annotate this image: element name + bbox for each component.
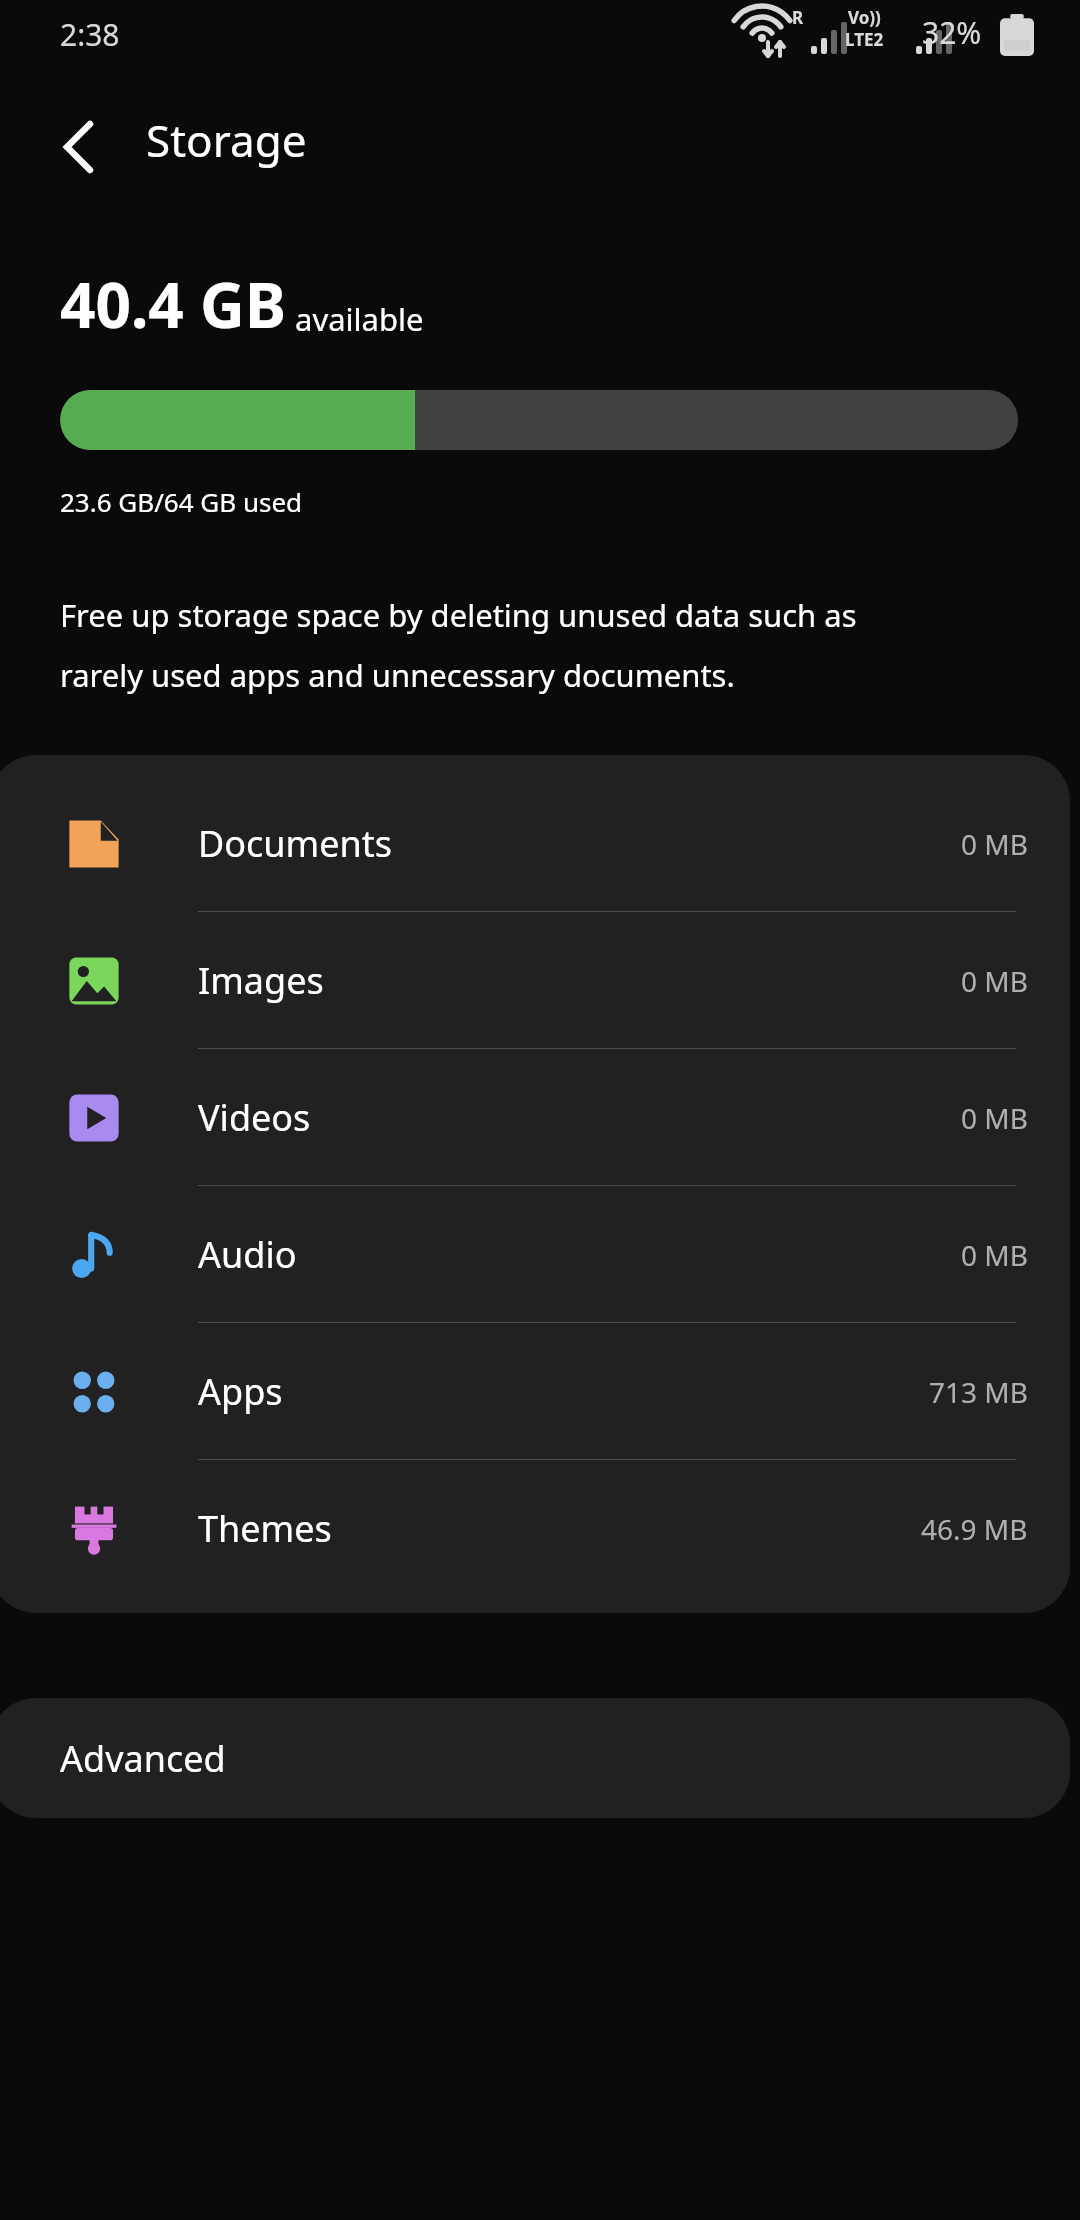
staticText: 32% bbox=[922, 12, 982, 53]
staticText: 0 MB bbox=[961, 1099, 1028, 1137]
staticText: Themes bbox=[198, 1504, 332, 1553]
staticText: 40.4 GB bbox=[60, 262, 287, 346]
staticText: R bbox=[792, 6, 804, 29]
button[interactable]: Advanced bbox=[0, 1698, 1070, 1818]
staticText: Documents bbox=[198, 819, 393, 868]
button[interactable]: Images bbox=[0, 912, 1070, 1049]
staticText: 2:38 bbox=[60, 14, 120, 55]
button[interactable]: Back bbox=[24, 92, 134, 202]
button[interactable]: Documents bbox=[0, 775, 1070, 912]
staticText: available bbox=[295, 298, 424, 340]
staticText: Audio bbox=[198, 1230, 297, 1279]
staticText: 23.6 GB/64 GB used bbox=[60, 484, 303, 519]
staticText: Advanced bbox=[60, 1734, 226, 1783]
button[interactable]: Audio bbox=[0, 1186, 1070, 1323]
staticText: 0 MB bbox=[961, 1236, 1028, 1274]
staticText: Storage bbox=[146, 110, 307, 170]
button[interactable]: Videos bbox=[0, 1049, 1070, 1186]
staticText: 713 MB bbox=[929, 1373, 1028, 1411]
button[interactable]: Apps bbox=[0, 1323, 1070, 1460]
staticText: 0 MB bbox=[961, 825, 1028, 863]
staticText: Vo)) bbox=[848, 6, 881, 29]
staticText: Free up storage space by deleting unused… bbox=[60, 594, 857, 696]
staticText: 0 MB bbox=[961, 962, 1028, 1000]
staticText: 46.9 MB bbox=[921, 1510, 1028, 1548]
button[interactable]: Themes bbox=[0, 1460, 1070, 1597]
staticText: LTE2 bbox=[845, 28, 884, 51]
staticText: Images bbox=[198, 956, 324, 1005]
staticText: Videos bbox=[198, 1093, 311, 1142]
staticText: Apps bbox=[198, 1367, 283, 1416]
